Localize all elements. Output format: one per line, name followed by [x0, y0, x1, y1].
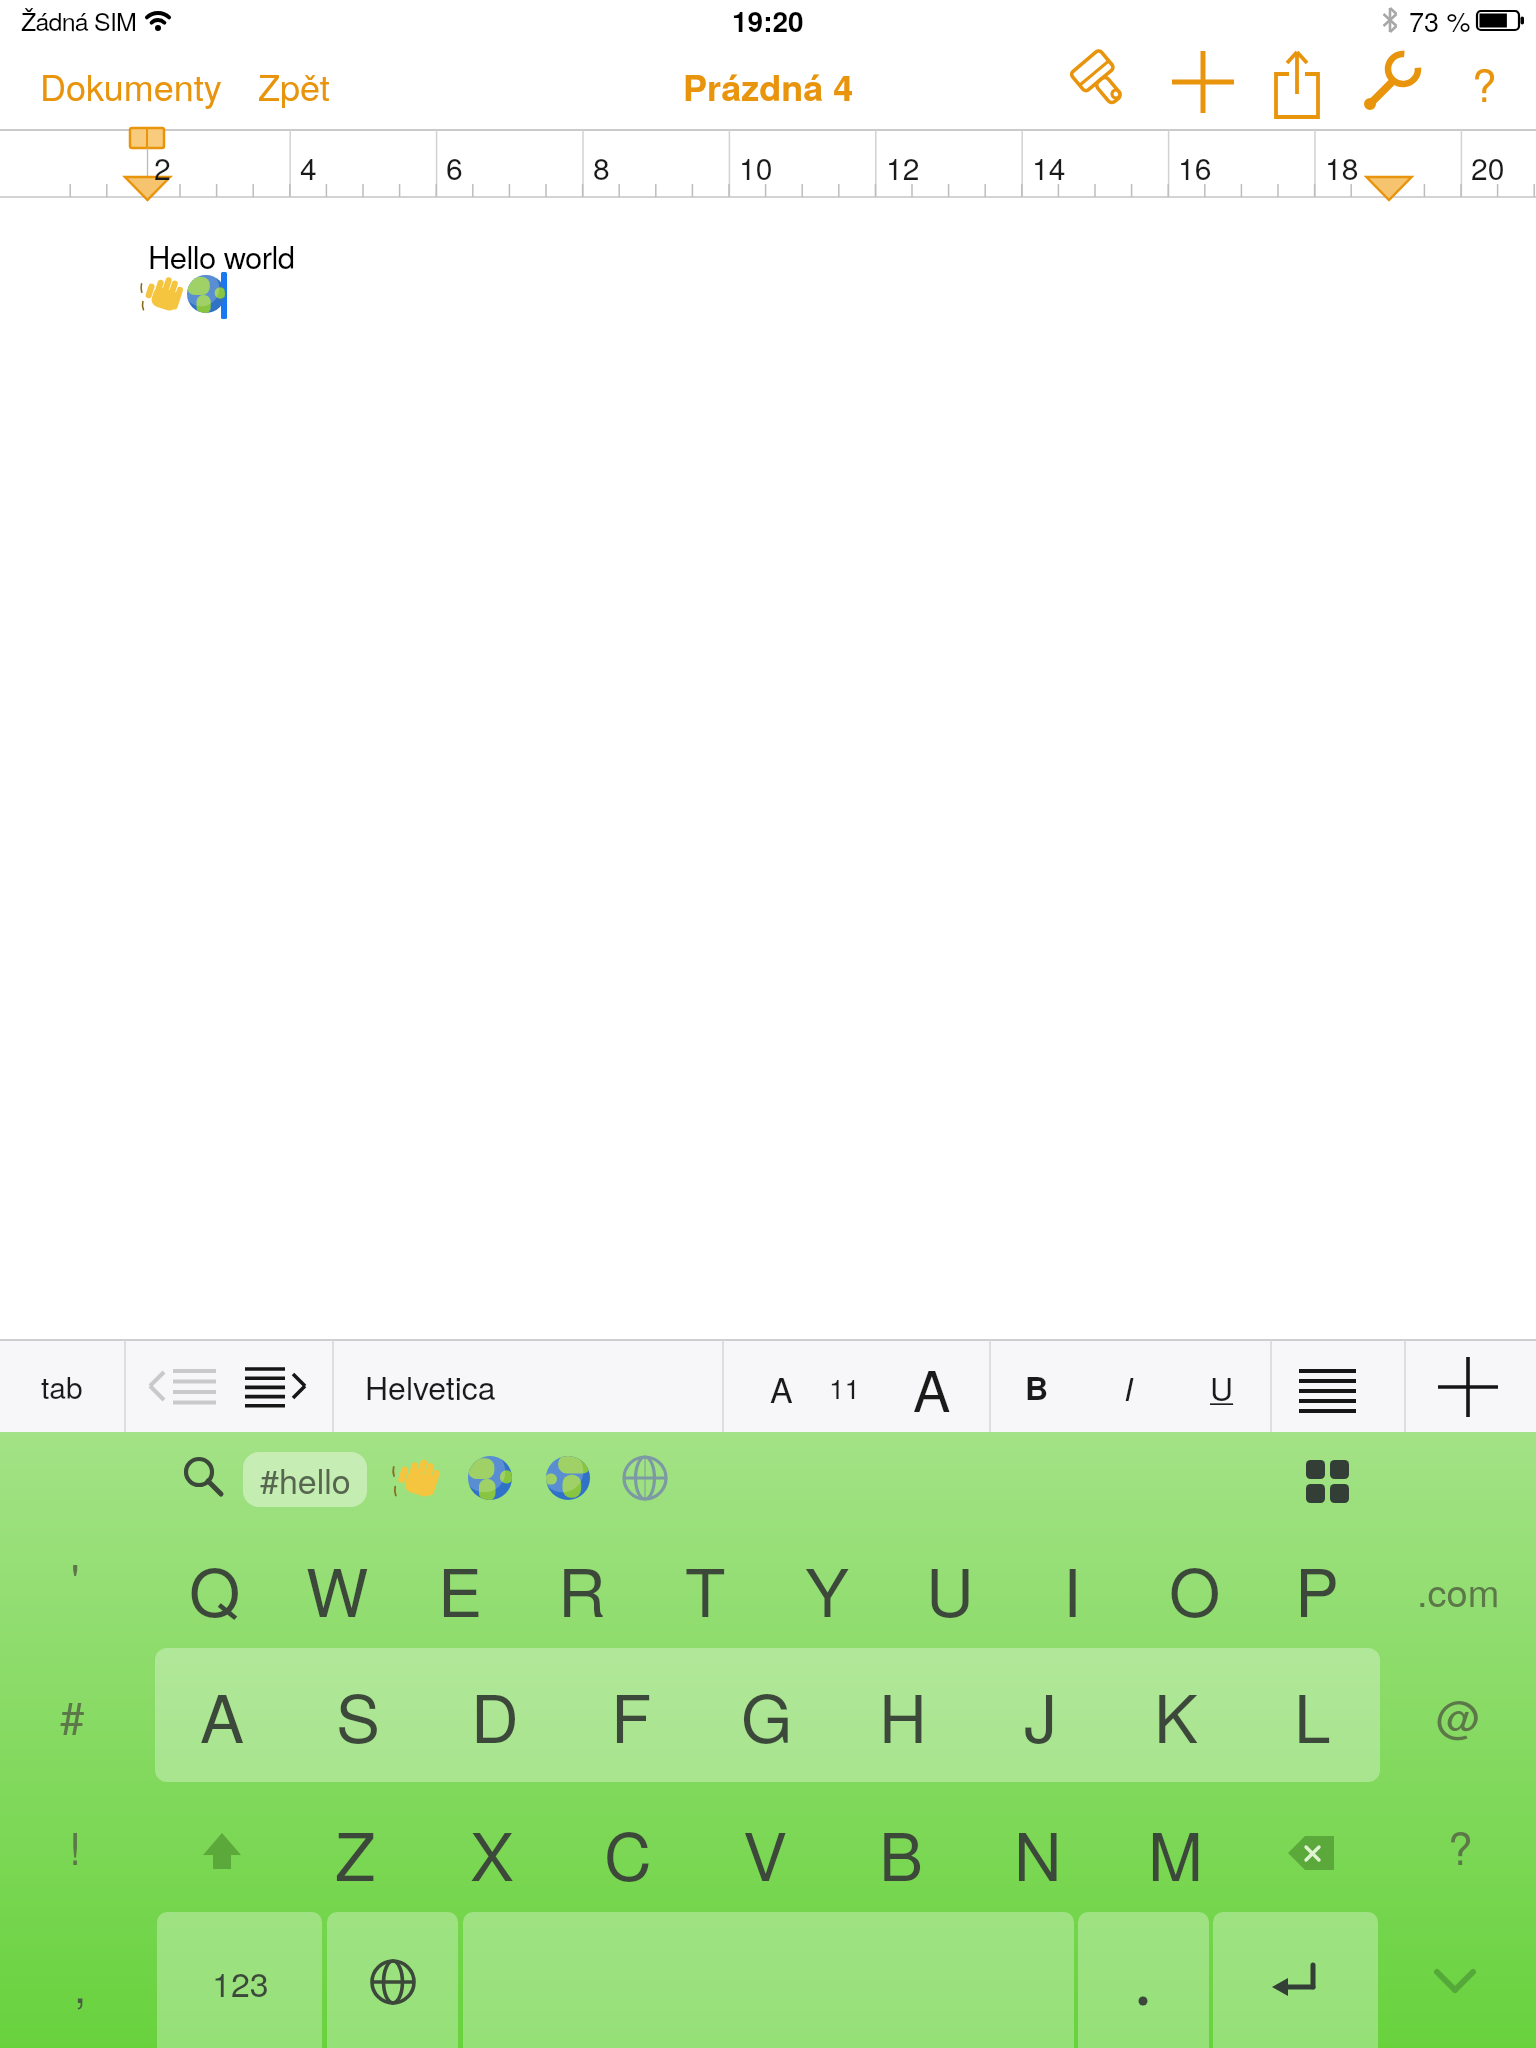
- staticText: 73 %: [1409, 1, 1471, 40]
- button[interactable]: A: [751, 1343, 811, 1433]
- staticText: C: [604, 1805, 652, 1900]
- button[interactable]: O: [1135, 1528, 1255, 1648]
- button[interactable]: ?: [1410, 1795, 1510, 1895]
- button[interactable]: [463, 1912, 1074, 2048]
- button[interactable]: H: [838, 1650, 968, 1778]
- button[interactable]: A: [892, 1342, 972, 1434]
- staticText: B: [879, 1805, 924, 1900]
- button[interactable]: tab: [0, 1341, 124, 1431]
- staticText: ?: [1472, 51, 1497, 114]
- button[interactable]: Helvetica: [365, 1331, 565, 1441]
- button[interactable]: [1271, 1341, 1405, 1431]
- staticText: 8: [593, 146, 610, 189]
- button[interactable]: K: [1111, 1650, 1241, 1778]
- button[interactable]: [327, 1912, 458, 2048]
- staticText: ,: [74, 1952, 87, 2015]
- button[interactable]: D: [430, 1650, 560, 1778]
- staticText: D: [471, 1667, 519, 1762]
- button[interactable]: Dokumenty: [40, 31, 290, 141]
- staticText: #: [60, 1683, 85, 1746]
- staticText: 16: [1178, 146, 1212, 189]
- button[interactable]: ': [25, 1526, 125, 1626]
- button[interactable]: B: [1002, 1342, 1072, 1432]
- button[interactable]: @: [1408, 1664, 1508, 1764]
- staticText: 19:20: [732, 0, 804, 40]
- button[interactable]: [1296, 1450, 1360, 1514]
- button[interactable]: X: [427, 1790, 557, 1914]
- button[interactable]: [185, 1815, 259, 1889]
- button[interactable]: [1420, 1950, 1492, 2022]
- staticText: Prázdná 4: [683, 60, 854, 112]
- staticText: U: [1210, 1364, 1234, 1410]
- button[interactable]: .com: [1388, 1540, 1528, 1640]
- staticText: .com: [1417, 1563, 1500, 1617]
- button[interactable]: U: [1187, 1342, 1257, 1432]
- button[interactable]: B: [836, 1790, 966, 1914]
- button[interactable]: J: [975, 1650, 1105, 1778]
- button[interactable]: M: [1110, 1790, 1240, 1914]
- button[interactable]: [1065, 47, 1135, 117]
- button[interactable]: A: [157, 1650, 287, 1778]
- button[interactable]: C: [563, 1790, 693, 1914]
- staticText: J: [1024, 1667, 1057, 1762]
- button[interactable]: Q: [155, 1528, 275, 1648]
- staticText: M: [1148, 1805, 1203, 1900]
- staticText: T: [685, 1541, 726, 1636]
- staticText: K: [1154, 1667, 1199, 1762]
- staticText: tab: [41, 1365, 83, 1408]
- button[interactable]: ,: [30, 1933, 130, 2033]
- button[interactable]: Z: [290, 1790, 420, 1914]
- button[interactable]: F: [566, 1650, 696, 1778]
- button[interactable]: R: [522, 1528, 642, 1648]
- button[interactable]: [1275, 1815, 1349, 1889]
- button[interactable]: W: [277, 1528, 397, 1648]
- button[interactable]: [1078, 1912, 1209, 2048]
- button[interactable]: Zpět: [258, 31, 368, 141]
- button[interactable]: L: [1247, 1650, 1377, 1778]
- button[interactable]: I: [1012, 1528, 1132, 1648]
- staticText: Hello world: [148, 233, 295, 277]
- staticText: 4: [300, 146, 317, 189]
- button[interactable]: #hello: [243, 1452, 367, 1507]
- staticText: 18: [1325, 146, 1359, 189]
- button[interactable]: [125, 1341, 333, 1431]
- button[interactable]: U: [890, 1528, 1010, 1648]
- button[interactable]: Y: [767, 1528, 887, 1648]
- staticText: Helvetica: [365, 1363, 496, 1409]
- staticText: I: [1063, 1541, 1082, 1636]
- staticText: A: [770, 1364, 793, 1413]
- button[interactable]: [1358, 47, 1428, 117]
- staticText: ': [71, 1545, 80, 1608]
- button[interactable]: ?: [1449, 47, 1519, 117]
- staticText: U: [926, 1541, 974, 1636]
- button[interactable]: V: [700, 1790, 830, 1914]
- button[interactable]: E: [400, 1528, 520, 1648]
- staticText: B: [1025, 1364, 1049, 1410]
- staticText: L: [1294, 1667, 1331, 1762]
- staticText: I: [1124, 1365, 1133, 1410]
- staticText: 2: [154, 146, 171, 189]
- button[interactable]: P: [1257, 1528, 1377, 1648]
- button[interactable]: S: [293, 1650, 423, 1778]
- staticText: A: [200, 1667, 245, 1762]
- staticText: H: [879, 1667, 927, 1762]
- staticText: 6: [446, 146, 463, 189]
- staticText: @: [1436, 1683, 1481, 1746]
- button[interactable]: [1405, 1341, 1536, 1431]
- button[interactable]: !: [25, 1795, 125, 1895]
- staticText: A: [913, 1348, 951, 1428]
- staticText: Y: [805, 1541, 850, 1636]
- button[interactable]: #: [22, 1664, 122, 1764]
- staticText: S: [336, 1667, 381, 1762]
- button[interactable]: [1213, 1912, 1378, 2048]
- staticText: 12: [886, 146, 920, 189]
- staticText: G: [741, 1667, 793, 1762]
- button[interactable]: [1168, 47, 1238, 117]
- button[interactable]: G: [702, 1650, 832, 1778]
- staticText: 14: [1032, 146, 1066, 189]
- button[interactable]: 123: [158, 1914, 323, 2048]
- button[interactable]: T: [645, 1528, 765, 1648]
- button[interactable]: N: [973, 1790, 1103, 1914]
- button[interactable]: I: [1093, 1342, 1163, 1432]
- button[interactable]: [1262, 47, 1332, 117]
